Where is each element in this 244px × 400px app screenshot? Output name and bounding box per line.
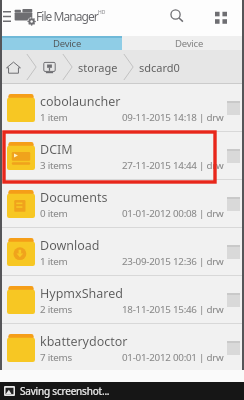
staticText: HD <box>98 9 106 16</box>
button[interactable]: Select <box>227 245 240 259</box>
button[interactable]: Select <box>227 101 240 115</box>
button[interactable]: Device <box>0 36 122 50</box>
staticText: 0 item <box>40 207 68 220</box>
staticText: cobolauncher <box>40 93 121 110</box>
staticText: File Manager <box>36 8 98 24</box>
button[interactable]: DCIM <box>0 132 244 180</box>
staticText: Saving screenshot... <box>20 384 110 398</box>
staticText: 27-11-2015 14:44 | drw <box>122 159 224 172</box>
button[interactable]: Grid view <box>207 0 235 32</box>
staticText: kbatterydoctor <box>40 333 128 350</box>
button[interactable]: sdcard0 <box>139 60 180 75</box>
staticText: Documents <box>40 189 108 206</box>
staticText: 1 item <box>40 111 68 124</box>
staticText: Device <box>53 37 82 50</box>
button[interactable]: Select <box>227 197 240 211</box>
button[interactable]: cobolauncher <box>0 84 244 132</box>
staticText: 7 items <box>40 351 72 364</box>
staticText: 1 item <box>40 255 68 268</box>
button[interactable]: storage <box>78 60 118 75</box>
button[interactable]: Device <box>42 60 57 75</box>
button[interactable]: Search <box>163 0 191 32</box>
staticText: 2 items <box>40 303 72 316</box>
staticText: 23-09-2015 12:36 | drw <box>122 255 224 268</box>
button[interactable]: HypmxShared <box>0 276 244 324</box>
button[interactable]: Device <box>122 36 244 50</box>
button[interactable]: Download <box>0 228 244 276</box>
staticText: 01-01-2012 00:08 | drw <box>122 207 224 220</box>
staticText: 01-01-2012 00:01 | drw <box>122 351 224 364</box>
button[interactable]: Documents <box>0 180 244 228</box>
button[interactable]: Select <box>227 293 240 307</box>
staticText: 09-11-2015 14:18 | drw <box>122 111 224 124</box>
button[interactable]: Home <box>6 60 21 75</box>
staticText: Device <box>175 37 204 50</box>
button[interactable]: kbatterydoctor <box>0 324 244 372</box>
staticText: 3 items <box>40 159 72 172</box>
button[interactable]: Select <box>227 341 240 355</box>
staticText: DCIM <box>40 141 73 158</box>
button[interactable]: Select <box>227 149 240 163</box>
staticText: HypmxShared <box>40 285 123 302</box>
button[interactable]: Menu <box>0 0 13 32</box>
staticText: Download <box>40 237 100 254</box>
staticText: 18-11-2015 15:46 | drw <box>122 303 224 316</box>
